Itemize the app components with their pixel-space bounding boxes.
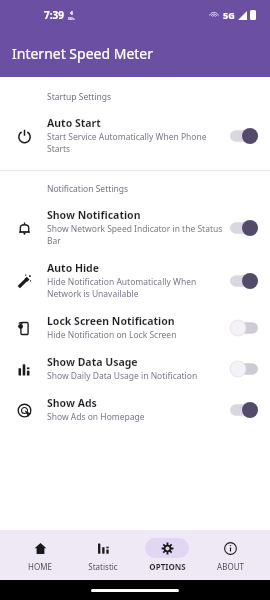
staticText: Show Notification: [47, 208, 141, 222]
staticText: Startup Settings: [47, 91, 112, 103]
button[interactable]: Toggle on: [230, 402, 258, 418]
button[interactable]: OPTIONS: [143, 538, 191, 572]
button[interactable]: Show Notification: [0, 201, 270, 254]
staticText: Show Daily Data Usage in Notification: [47, 370, 198, 382]
staticText: KB/s: [68, 17, 75, 21]
staticText: Auto Hide: [47, 261, 100, 275]
button[interactable]: Show Data Usage: [0, 348, 270, 389]
staticText: Auto Start: [47, 116, 101, 130]
staticText: Notification Settings: [47, 183, 129, 195]
staticText: Show Ads on Homepage: [47, 411, 145, 423]
staticText: Start Service Automatically When Phone S…: [47, 131, 224, 155]
staticText: Hide Notification Automatically When Net…: [47, 276, 224, 300]
staticText: Internet Speed Meter: [12, 44, 154, 63]
staticText: 5G: [223, 9, 235, 21]
staticText: Hide Notification on Lock Screen: [47, 329, 177, 341]
button[interactable]: Show Ads: [0, 389, 270, 430]
button[interactable]: Toggle on: [230, 273, 258, 289]
button[interactable]: Toggle off: [230, 361, 258, 377]
button[interactable]: Toggle on: [230, 128, 258, 144]
staticText: Show Ads: [47, 396, 97, 410]
button[interactable]: HOME: [16, 538, 64, 572]
button[interactable]: Auto Hide: [0, 254, 270, 307]
staticText: 4: [70, 10, 73, 17]
button[interactable]: Toggle off: [230, 320, 258, 336]
button[interactable]: Statistic: [79, 538, 127, 572]
button[interactable]: Toggle on: [230, 220, 258, 236]
staticText: Show Data Usage: [47, 355, 138, 369]
button[interactable]: Auto Start: [0, 109, 270, 162]
staticText: Statistic: [88, 561, 118, 572]
staticText: Show Network Speed Indicator in the Stat…: [47, 223, 224, 247]
staticText: HOME: [28, 561, 52, 572]
staticText: Lock Screen Notification: [47, 314, 175, 328]
button[interactable]: Lock Screen Notification: [0, 307, 270, 348]
button[interactable]: ABOUT: [206, 538, 254, 572]
staticText: ABOUT: [217, 561, 244, 572]
staticText: OPTIONS: [149, 561, 186, 572]
staticText: 7:39: [44, 8, 64, 22]
